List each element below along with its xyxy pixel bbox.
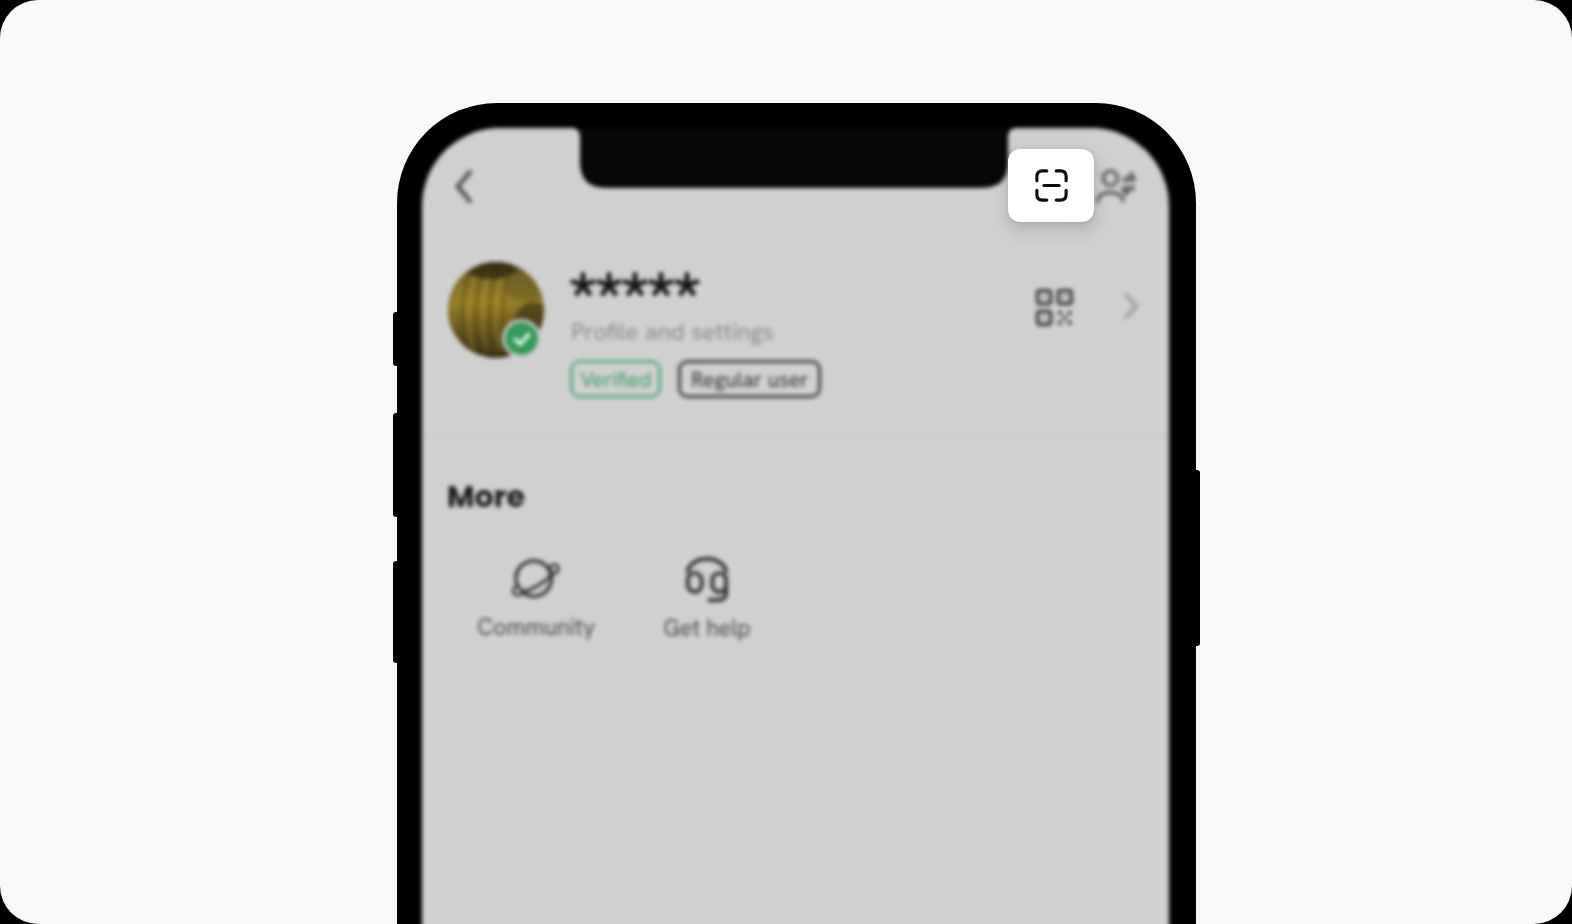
button[interactable]: Verified [570, 360, 661, 398]
button[interactable]: Back [440, 160, 486, 212]
staticText: Verified [580, 366, 652, 393]
button[interactable] [422, 246, 1169, 376]
button[interactable]: Scan code [1008, 149, 1094, 222]
staticText: Get help [663, 613, 751, 643]
staticText: Regular user [691, 366, 809, 393]
staticText: Profile and settings [571, 316, 774, 347]
button[interactable]: Switch account [1084, 159, 1148, 213]
staticText: More [447, 476, 525, 518]
button[interactable]: Community [456, 543, 616, 653]
button[interactable]: Show QR code [1022, 275, 1087, 340]
button[interactable]: Regular user [678, 360, 821, 398]
button[interactable]: Get help [627, 543, 787, 653]
staticText: Community [477, 612, 595, 642]
